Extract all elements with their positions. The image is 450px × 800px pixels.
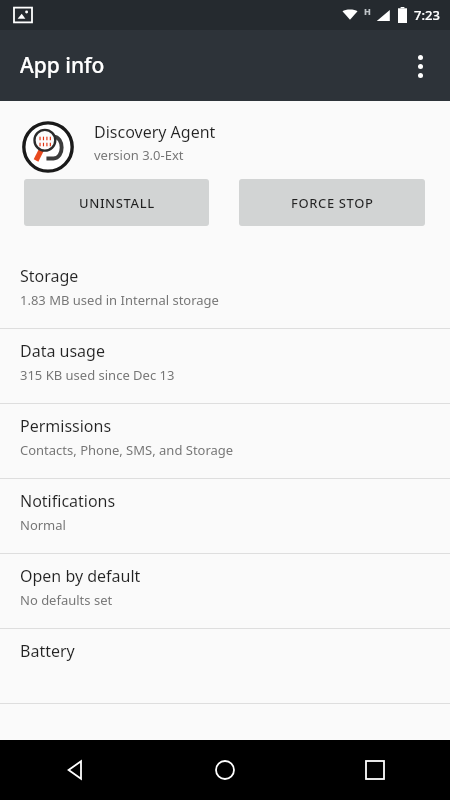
button[interactable]: FORCE STOP: [239, 179, 425, 226]
button[interactable]: More options: [398, 44, 442, 88]
staticText: App info: [20, 51, 105, 80]
button[interactable]: Notifications: [0, 479, 450, 554]
staticText: UNINSTALL: [79, 194, 155, 212]
staticText: 7:23: [414, 6, 440, 24]
staticText: 315 KB used since Dec 13: [20, 366, 175, 384]
staticText: version 3.0-Ext: [94, 146, 184, 164]
staticText: Permissions: [20, 415, 112, 437]
staticText: Normal: [20, 516, 66, 534]
staticText: Storage: [20, 265, 79, 287]
button[interactable]: Open by default: [0, 554, 450, 629]
staticText: Data usage: [20, 340, 105, 362]
button[interactable]: Back: [0, 740, 150, 800]
staticText: Open by default: [20, 565, 141, 587]
staticText: Notifications: [20, 490, 116, 512]
button[interactable]: Recent apps: [300, 740, 450, 800]
staticText: Discovery Agent: [94, 121, 216, 143]
button[interactable]: Home: [150, 740, 300, 800]
staticText: FORCE STOP: [291, 194, 374, 212]
staticText: H: [364, 5, 371, 17]
staticText: 1.83 MB used in Internal storage: [20, 291, 219, 309]
staticText: Contacts, Phone, SMS, and Storage: [20, 441, 234, 459]
button[interactable]: Battery: [0, 629, 450, 704]
staticText: No defaults set: [20, 591, 113, 609]
button[interactable]: Permissions: [0, 404, 450, 479]
button[interactable]: UNINSTALL: [24, 179, 209, 226]
staticText: Battery: [20, 640, 75, 662]
button[interactable]: Storage: [0, 254, 450, 329]
button[interactable]: Data usage: [0, 329, 450, 404]
